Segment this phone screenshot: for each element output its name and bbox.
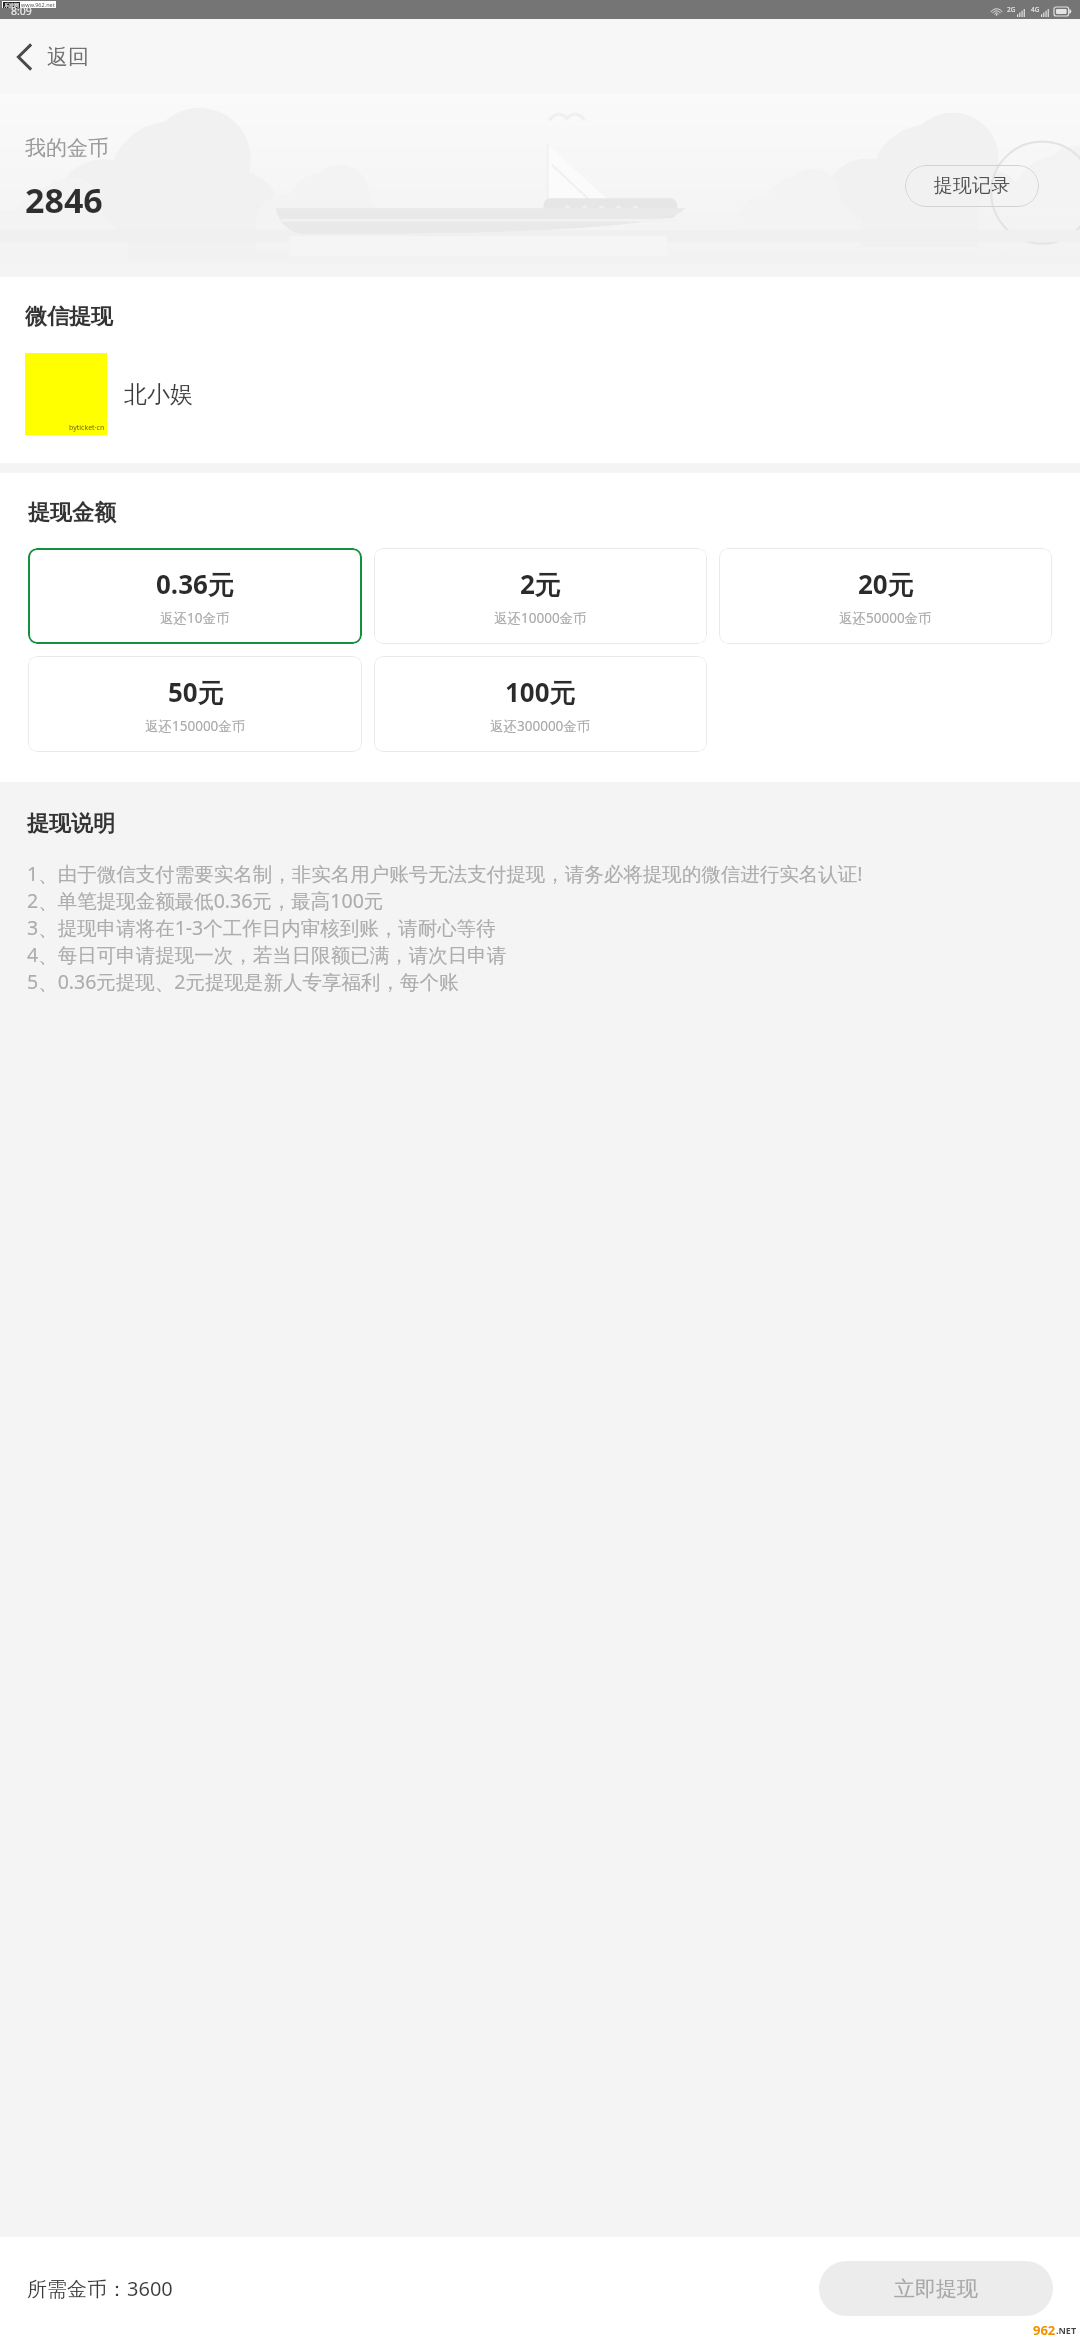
staticText: www.962.net [21, 1, 55, 8]
staticText: 返还300000金币 [490, 717, 591, 735]
staticText: 3、提现申请将在1-3个工作日内审核到账，请耐心等待 [27, 914, 496, 941]
button[interactable]: byticket·cn [25, 353, 193, 435]
staticText: .NET [1056, 2324, 1077, 2336]
staticText: 乐游网 [4, 2, 19, 8]
button[interactable]: 2元 [374, 548, 707, 644]
staticText: 50元 [168, 674, 224, 710]
staticText: 北小娱 [124, 380, 193, 409]
button[interactable]: 100元 [374, 656, 707, 752]
button[interactable]: 50元 [28, 656, 362, 752]
staticText: byticket·cn [69, 423, 105, 433]
button[interactable]: 提现记录 [905, 165, 1039, 207]
button[interactable]: 返回 [0, 32, 109, 82]
staticText: 2、单笔提现金额最低0.36元，最高100元 [27, 887, 384, 914]
staticText: 100元 [505, 674, 576, 710]
staticText: 立即提现 [894, 2276, 978, 2302]
button[interactable]: 立即提现 [819, 2261, 1053, 2316]
staticText: 2元 [520, 566, 561, 602]
staticText: 返还150000金币 [145, 717, 246, 735]
button[interactable]: 20元 [719, 548, 1052, 644]
staticText: 我的金币 [25, 135, 109, 161]
staticText: 4、每日可申请提现一次，若当日限额已满，请次日申请 [27, 941, 507, 968]
staticText: 微信提现 [25, 303, 113, 331]
staticText: 所需金币：3600 [27, 2275, 173, 2302]
staticText: 962 [1033, 2321, 1056, 2339]
staticText: 2G [1007, 5, 1016, 14]
staticText: 1、由于微信支付需要实名制，非实名用户账号无法支付提现，请务必将提现的微信进行实… [27, 860, 863, 887]
staticText: 提现记录 [934, 174, 1010, 198]
staticText: 2846 [25, 177, 103, 223]
staticText: 提现金额 [28, 499, 116, 527]
staticText: 5、0.36元提现、2元提现是新人专享福利，每个账 [27, 968, 459, 995]
staticText: 4G [1031, 5, 1040, 14]
staticText: 提现说明 [27, 810, 115, 838]
button[interactable]: 0.36元 [28, 548, 362, 644]
staticText: 返回 [47, 44, 89, 70]
staticText: 8:09 [11, 4, 32, 18]
staticText: 返还50000金币 [839, 609, 932, 627]
staticText: 返还10000金币 [494, 609, 587, 627]
staticText: 0.36元 [156, 566, 234, 602]
staticText: 返还10金币 [160, 609, 230, 627]
staticText: 20元 [858, 566, 914, 602]
